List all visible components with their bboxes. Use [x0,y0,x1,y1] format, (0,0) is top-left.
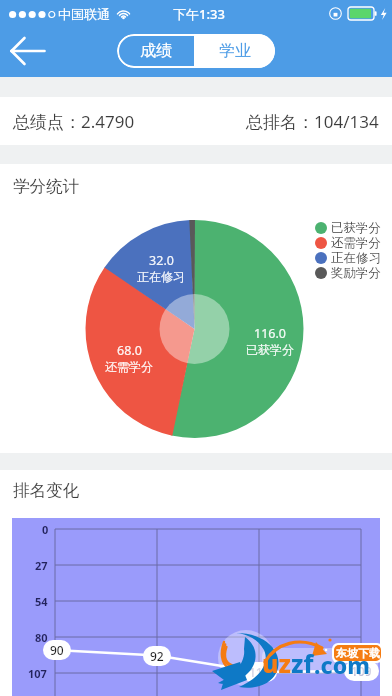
staticText: 中国联通 [58,6,110,22]
staticText: 0 [42,522,49,537]
staticText: 110 [249,664,270,680]
button[interactable]: 学业 [194,34,275,68]
staticText: 32.0 [149,252,174,269]
staticText: 109 [351,663,372,679]
staticText: 正在修习 [331,250,381,265]
staticText: 54 [35,594,48,609]
staticText: uz [262,646,291,680]
staticText: 奖励学分 [331,265,381,280]
staticText: 还需学分 [105,359,153,374]
staticText: 正在修习 [137,269,185,284]
staticText: 27 [35,558,48,573]
staticText: 学业 [219,41,251,61]
staticText: 下午1:33 [173,5,225,23]
staticText: 成绩 [140,41,172,61]
staticText: zf [291,646,314,680]
button[interactable]: Back [6,29,50,73]
staticText: 还需学分 [331,235,381,250]
staticText: 116.0 [254,325,286,342]
staticText: 107 [28,666,47,681]
staticText: 排名变化 [13,480,79,501]
staticText: 总排名：104/134 [246,110,379,133]
staticText: .com [314,649,370,680]
staticText: 80 [35,630,48,645]
staticText: 已获学分 [246,342,294,357]
button[interactable]: 成绩 [117,34,194,68]
staticText: 学分统计 [13,176,79,197]
staticText: 总绩点：2.4790 [13,110,135,133]
staticText: 68.0 [117,342,142,359]
staticText: 92 [150,648,164,664]
staticText: 90 [50,642,64,658]
staticText: 已获学分 [331,220,381,235]
staticText: 东坡下载 [336,646,380,660]
